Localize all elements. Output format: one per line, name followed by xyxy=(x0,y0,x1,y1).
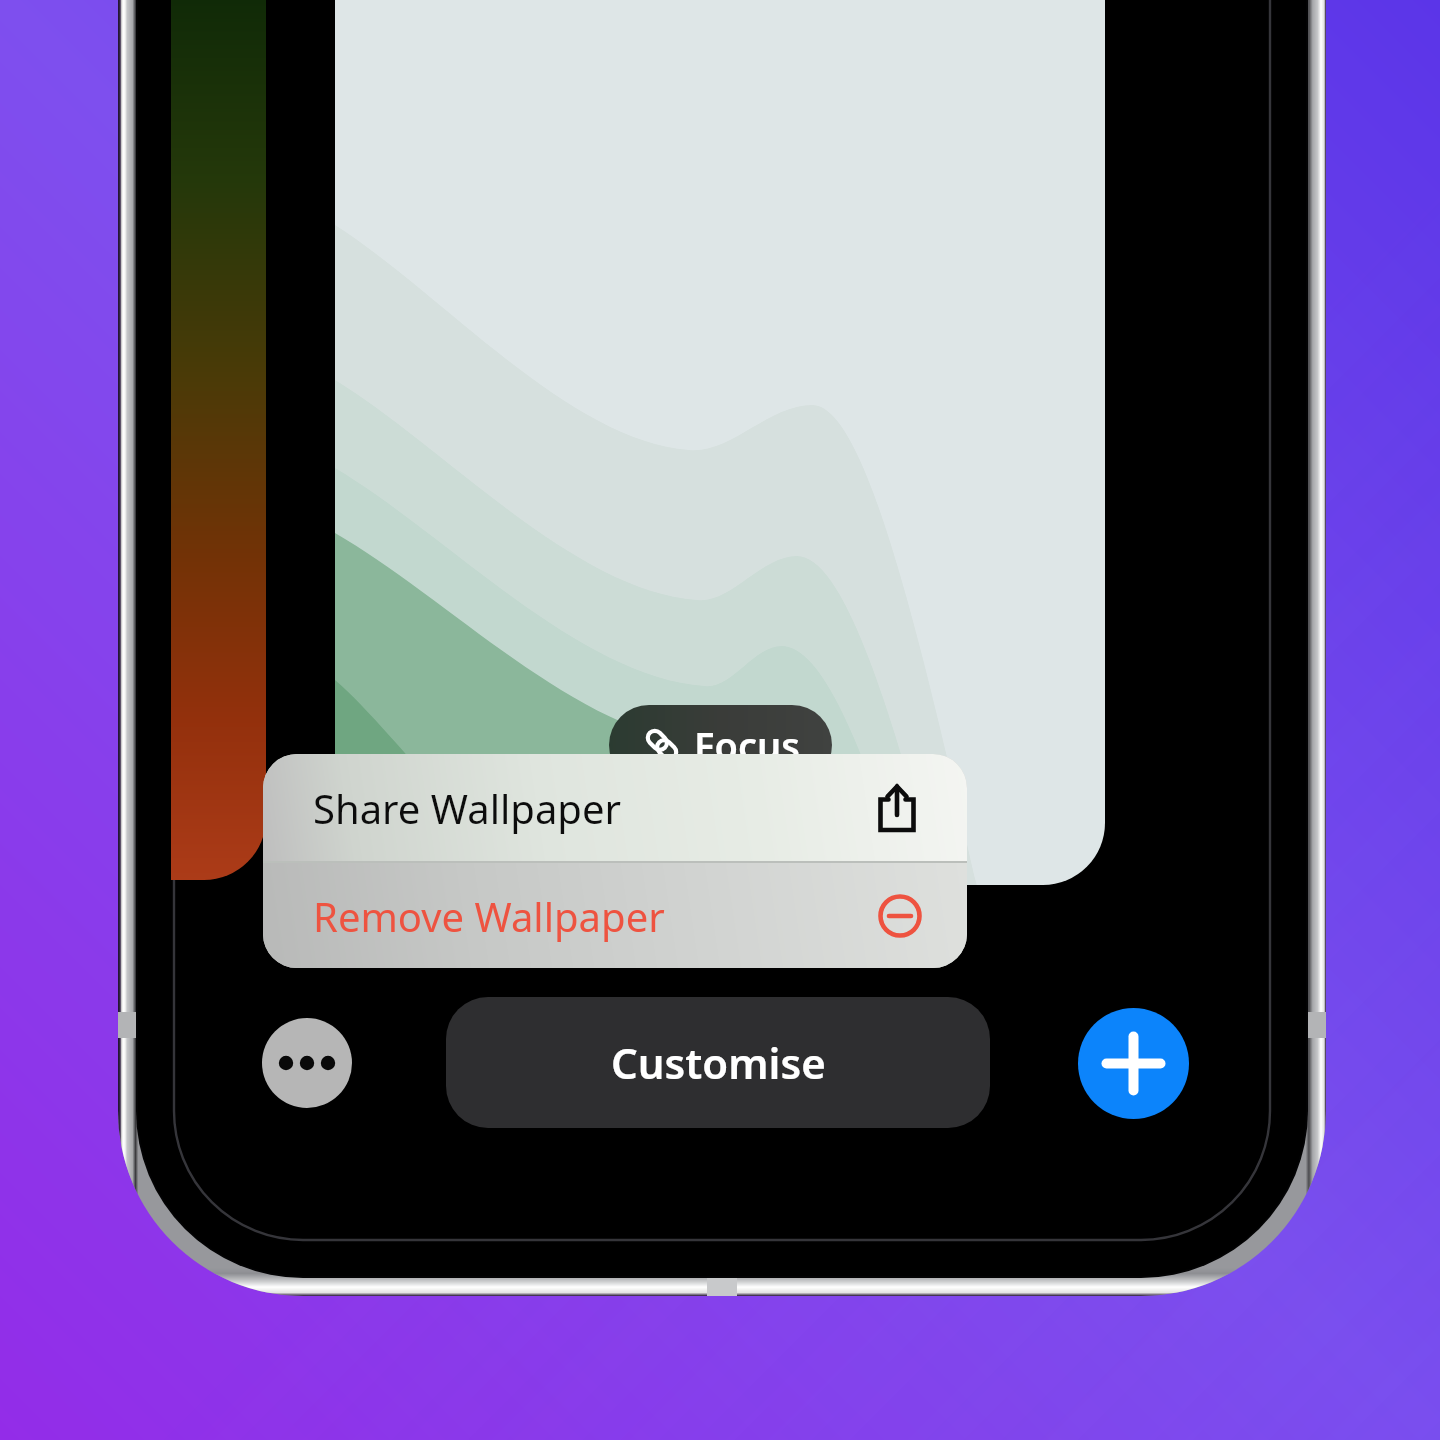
button[interactable]: Remove Wallpaper xyxy=(263,863,967,968)
staticText: Share Wallpaper xyxy=(313,781,872,835)
button[interactable]: More options xyxy=(262,1018,352,1108)
button[interactable]: Add wallpaper xyxy=(1078,1008,1189,1119)
staticText: Customise xyxy=(611,1034,826,1091)
button[interactable]: Share Wallpaper xyxy=(263,754,967,861)
staticText: Remove Wallpaper xyxy=(313,889,878,943)
button[interactable]: Focus xyxy=(609,705,832,785)
staticText: Focus xyxy=(694,719,800,771)
button[interactable]: Customise xyxy=(446,997,990,1128)
